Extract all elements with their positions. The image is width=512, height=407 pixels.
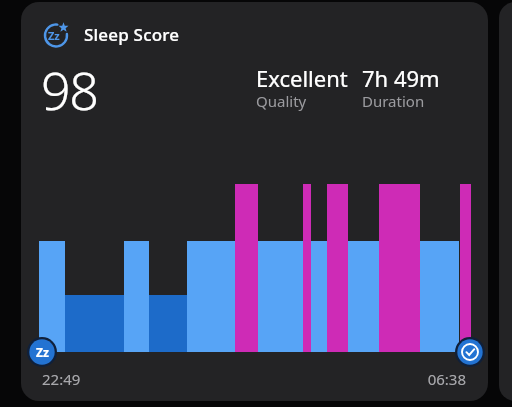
staticText: 22:49 [42,369,81,389]
button[interactable]: Zz [21,2,488,401]
button[interactable] [455,337,485,367]
button[interactable] [499,2,512,401]
staticText: Duration [362,91,425,111]
button[interactable]: Zz [27,337,57,367]
staticText: 06:38 [406,369,466,389]
staticText: Zz [48,28,60,43]
staticText: Sleep Score [84,23,180,46]
staticText: 98 [41,54,98,125]
staticText: 7h 49m [362,63,440,93]
staticText: Quality [256,91,307,111]
staticText: Zz [36,344,49,360]
staticText: Excellent [256,63,348,93]
